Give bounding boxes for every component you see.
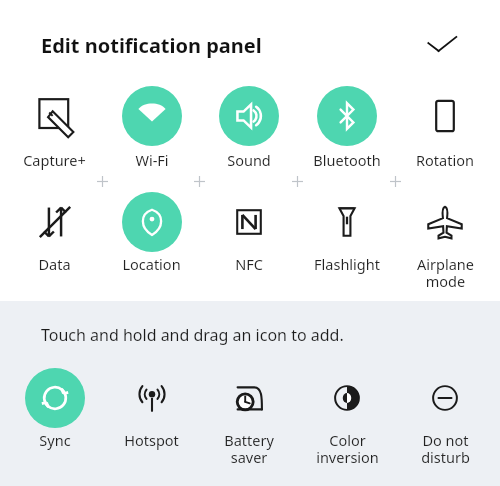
button[interactable]: Do not disturb — [396, 368, 494, 467]
button[interactable]: Hotspot — [103, 368, 200, 450]
staticText: Bluetooth — [313, 150, 381, 170]
staticText: Flashlight — [314, 254, 380, 274]
button[interactable]: Battery saver — [200, 368, 298, 467]
button[interactable]: Capture+ — [6, 86, 103, 170]
button[interactable]: Flashlight — [298, 192, 396, 274]
button[interactable]: Done — [416, 18, 468, 70]
button[interactable]: Bluetooth — [298, 86, 396, 170]
button[interactable]: Rotation — [396, 86, 494, 170]
staticText: Capture+ — [23, 150, 86, 170]
button[interactable]: Wi-Fi — [103, 86, 200, 170]
staticText: Do not disturb — [421, 430, 470, 467]
staticText: Wi-Fi — [135, 150, 169, 170]
staticText: Edit notification panel — [41, 32, 262, 59]
button[interactable]: Data — [6, 192, 103, 274]
staticText: Hotspot — [124, 430, 179, 450]
button[interactable]: Location — [103, 192, 200, 274]
button[interactable]: NFC — [200, 192, 298, 274]
staticText: Color inversion — [316, 430, 379, 467]
staticText: Airplane mode — [417, 254, 474, 291]
staticText: Rotation — [416, 150, 474, 170]
staticText: Sound — [227, 150, 271, 170]
staticText: NFC — [235, 254, 263, 274]
button[interactable]: Airplane mode — [396, 192, 494, 291]
staticText: Touch and hold and drag an icon to add. — [41, 324, 344, 346]
button[interactable]: Color inversion — [298, 368, 396, 467]
staticText: Data — [38, 254, 71, 274]
staticText: Battery saver — [224, 430, 274, 467]
button[interactable]: Sound — [200, 86, 298, 170]
button[interactable]: Sync — [6, 368, 103, 450]
staticText: Sync — [39, 430, 71, 450]
staticText: Location — [122, 254, 181, 274]
